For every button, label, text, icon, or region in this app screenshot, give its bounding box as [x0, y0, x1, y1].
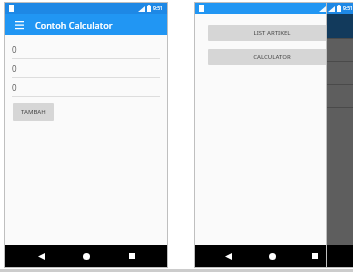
staticText: CALCULATOR — [253, 53, 291, 61]
staticText: LIST ARTIKEL — [253, 29, 291, 37]
staticText: Contoh Calculator — [35, 19, 113, 31]
staticText: TAMBAH — [21, 108, 46, 116]
button[interactable]: Recent apps — [305, 246, 325, 266]
staticText: 0 — [12, 82, 17, 93]
button[interactable]: CALCULATOR — [208, 49, 335, 65]
staticText: 9:51 — [334, 5, 344, 12]
button[interactable]: TAMBAH — [13, 103, 54, 121]
staticText: 9:51 — [153, 5, 163, 12]
button[interactable]: Back — [218, 246, 238, 266]
staticText: 9:51 — [343, 5, 353, 12]
button[interactable]: Home — [76, 246, 96, 266]
button[interactable]: Back — [31, 246, 51, 266]
button[interactable]: Recent apps — [122, 246, 142, 266]
button[interactable]: Open navigation menu — [12, 18, 26, 32]
staticText: 0 — [12, 44, 17, 55]
button[interactable]: LIST ARTIKEL — [208, 25, 335, 41]
staticText: 0 — [12, 63, 17, 74]
button[interactable]: Home — [262, 246, 282, 266]
